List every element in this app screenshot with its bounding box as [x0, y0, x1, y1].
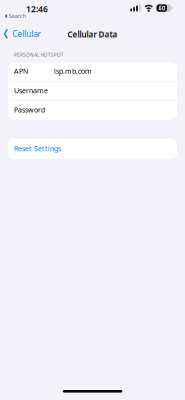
button[interactable]: Reset Settings [8, 139, 177, 159]
button[interactable]: Username [8, 82, 177, 100]
staticText: Search [9, 12, 26, 20]
button[interactable]: Password [8, 101, 177, 120]
staticText: Password [14, 105, 45, 114]
staticText: 12:46 [26, 3, 48, 15]
staticText: Cellular Data [67, 29, 117, 40]
button[interactable]: Cellular [4, 24, 40, 44]
staticText: PERSONAL [14, 52, 39, 58]
staticText: isp.mb.com [54, 66, 92, 76]
button[interactable]: APN [8, 62, 177, 81]
staticText: APN [14, 66, 28, 76]
staticText: Reset Settings [14, 144, 61, 153]
staticText: Username [14, 86, 48, 95]
staticText: Cellular [12, 28, 40, 39]
staticText: HOTSPOT [41, 52, 64, 58]
